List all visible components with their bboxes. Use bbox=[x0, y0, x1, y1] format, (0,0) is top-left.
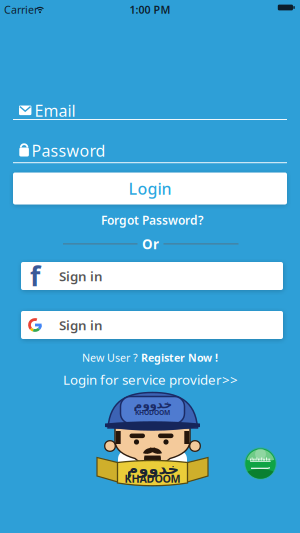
staticText: Password bbox=[31, 140, 105, 161]
staticText: Sign in bbox=[59, 267, 103, 285]
staticText: f bbox=[30, 258, 40, 294]
staticText: New User ? bbox=[82, 350, 138, 365]
staticText: Forgot Password? bbox=[101, 212, 204, 228]
staticText: Email bbox=[34, 100, 75, 121]
button[interactable]: Switch language bbox=[242, 445, 278, 481]
staticText: Sign in bbox=[59, 316, 103, 334]
button[interactable]: New User ? bbox=[82, 350, 218, 365]
button[interactable]: Login for service provider>> bbox=[63, 371, 238, 388]
staticText: Or bbox=[142, 235, 159, 253]
staticText: 1:00 PM bbox=[129, 2, 170, 17]
staticText: KHADOOM bbox=[124, 471, 180, 486]
staticText: KHODOOM bbox=[135, 408, 170, 417]
button[interactable]: Password bbox=[13, 135, 287, 163]
button[interactable]: Login bbox=[13, 172, 287, 204]
button[interactable]: Forgot Password? bbox=[101, 212, 204, 228]
staticText: خدووم bbox=[126, 459, 179, 478]
button[interactable]: f bbox=[21, 262, 283, 290]
staticText: خدووم bbox=[133, 397, 172, 411]
button[interactable]: Email bbox=[13, 92, 287, 120]
staticText: Login for service provider>> bbox=[63, 371, 238, 388]
button[interactable]: Sign in bbox=[21, 311, 283, 339]
staticText: Register Now ! bbox=[141, 350, 218, 365]
staticText: Carrier bbox=[4, 2, 38, 17]
staticText: Login bbox=[128, 178, 171, 199]
